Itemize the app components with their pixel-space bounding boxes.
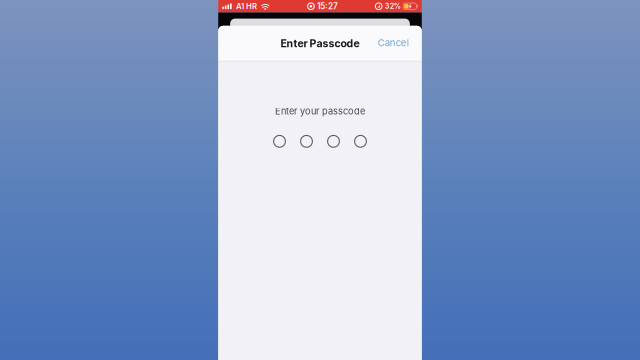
staticText: Cancel: [378, 37, 409, 49]
staticText: Enter your passcode: [275, 106, 365, 117]
staticText: 15:27: [317, 1, 338, 11]
staticText: A1 HR: [236, 2, 257, 11]
button[interactable]: Cancel: [372, 29, 415, 57]
staticText: Enter Passcode: [280, 37, 359, 50]
staticText: 32%: [385, 2, 401, 11]
